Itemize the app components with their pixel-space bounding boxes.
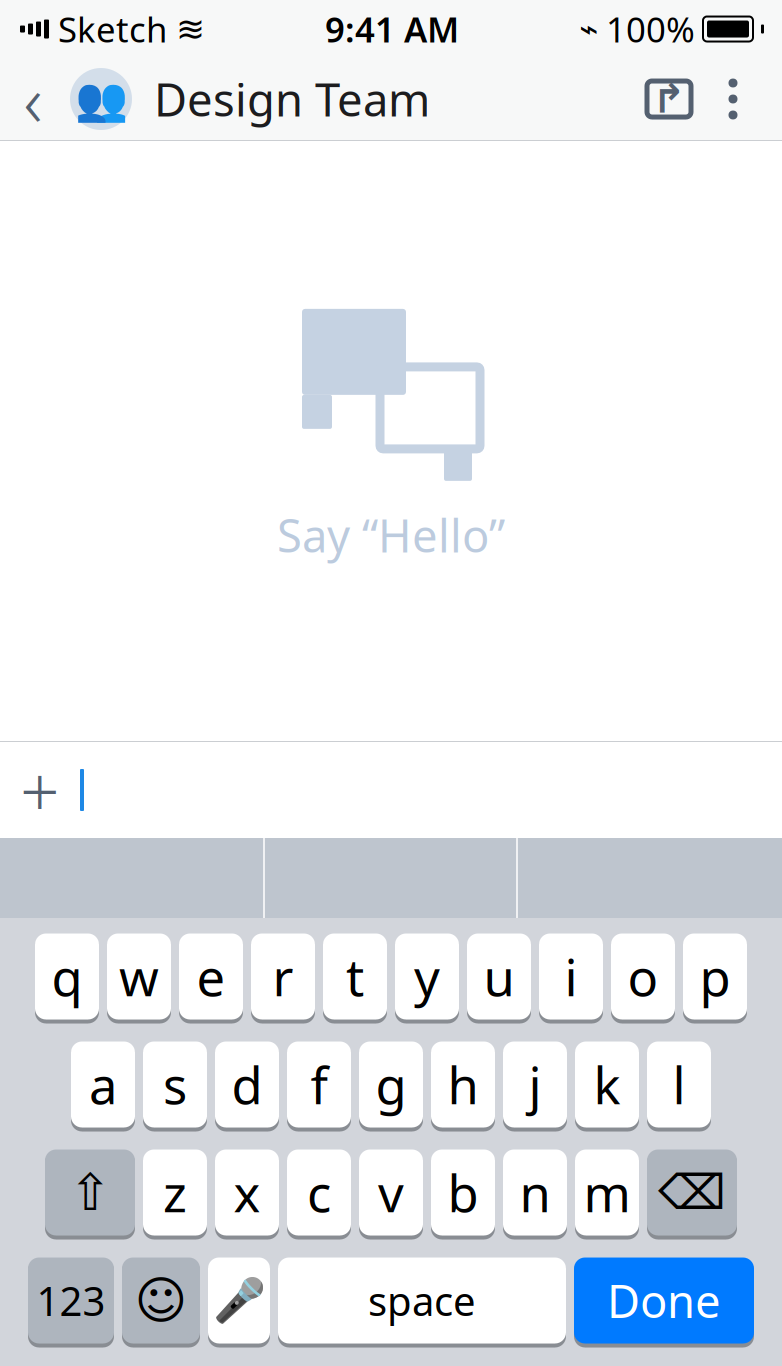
- button[interactable]: Dictate: [208, 1256, 270, 1348]
- button[interactable]: Delete: [647, 1148, 737, 1240]
- staticText: e: [196, 943, 225, 1010]
- staticText: 100%: [606, 6, 695, 52]
- button[interactable]: t: [323, 932, 387, 1024]
- staticText: z: [163, 1159, 187, 1226]
- button[interactable]: Shift: [45, 1148, 135, 1240]
- staticText: 🎤: [212, 1276, 265, 1325]
- button[interactable]: j: [503, 1040, 567, 1132]
- staticText: 9:41 AM: [325, 6, 459, 52]
- button[interactable]: z: [143, 1148, 207, 1240]
- staticText: o: [627, 943, 658, 1010]
- staticText: 👥: [74, 75, 127, 123]
- staticText: y: [414, 943, 440, 1010]
- staticText: ⌁: [579, 11, 598, 47]
- staticText: p: [699, 943, 730, 1010]
- staticText: w: [119, 943, 159, 1010]
- staticText: j: [528, 1051, 541, 1118]
- button[interactable]: k: [575, 1040, 639, 1132]
- staticText: i: [564, 943, 577, 1010]
- button[interactable]: v: [359, 1148, 423, 1240]
- button[interactable]: Design Team: [136, 69, 430, 129]
- staticText: n: [519, 1159, 550, 1226]
- button[interactable]: u: [467, 932, 531, 1024]
- button[interactable]: Add attachment: [0, 744, 80, 836]
- staticText: ‹: [23, 51, 42, 147]
- staticText: h: [447, 1051, 478, 1118]
- staticText: f: [310, 1051, 327, 1118]
- staticText: b: [447, 1159, 478, 1226]
- staticText: ☺: [134, 1272, 187, 1329]
- staticText: r: [272, 943, 293, 1010]
- staticText: g: [375, 1051, 406, 1118]
- button[interactable]: e: [179, 932, 243, 1024]
- staticText: ⌫: [658, 1165, 726, 1220]
- button[interactable]: space: [278, 1256, 566, 1348]
- button[interactable]: Cast: [636, 66, 702, 132]
- staticText: ↱: [652, 76, 686, 122]
- staticText: m: [583, 1159, 630, 1226]
- button[interactable]: Back: [0, 61, 66, 137]
- staticText: 123: [36, 1274, 105, 1327]
- staticText: Done: [607, 1270, 721, 1331]
- button[interactable]: y: [395, 932, 459, 1024]
- button[interactable]: Done: [574, 1256, 754, 1348]
- staticText: s: [163, 1051, 187, 1118]
- staticText: c: [307, 1159, 331, 1226]
- staticText: space: [368, 1274, 476, 1327]
- staticText: k: [593, 1051, 620, 1118]
- staticText: u: [483, 943, 514, 1010]
- button[interactable]: Group avatar: [66, 64, 136, 134]
- button[interactable]: h: [431, 1040, 495, 1132]
- staticText: q: [51, 943, 82, 1010]
- staticText: l: [672, 1051, 685, 1118]
- staticText: +: [20, 744, 60, 836]
- button[interactable]: b: [431, 1148, 495, 1240]
- button[interactable]: Emoji: [122, 1256, 200, 1348]
- button[interactable]: a: [71, 1040, 135, 1132]
- staticText: Design Team: [154, 69, 430, 129]
- button[interactable]: w: [107, 932, 171, 1024]
- button[interactable]: m: [575, 1148, 639, 1240]
- button[interactable]: Message field: [80, 744, 431, 836]
- staticText: a: [89, 1051, 117, 1118]
- button[interactable]: c: [287, 1148, 351, 1240]
- button[interactable]: p: [683, 932, 747, 1024]
- button[interactable]: i: [539, 932, 603, 1024]
- staticText: d: [231, 1051, 262, 1118]
- staticText: ⇧: [69, 1164, 111, 1221]
- staticText: Sketch: [58, 6, 167, 52]
- staticText: v: [378, 1159, 404, 1226]
- button[interactable]: g: [359, 1040, 423, 1132]
- button[interactable]: x: [215, 1148, 279, 1240]
- button[interactable]: d: [215, 1040, 279, 1132]
- button[interactable]: r: [251, 932, 315, 1024]
- button[interactable]: n: [503, 1148, 567, 1240]
- staticText: t: [346, 943, 364, 1010]
- button[interactable]: Numbers: [28, 1256, 114, 1348]
- staticText: Say “Hello”: [277, 505, 505, 565]
- button[interactable]: q: [35, 932, 99, 1024]
- button[interactable]: More options: [702, 66, 764, 132]
- staticText: x: [233, 1159, 260, 1226]
- staticText: ≋: [176, 9, 205, 49]
- button[interactable]: l: [647, 1040, 711, 1132]
- button[interactable]: o: [611, 932, 675, 1024]
- button[interactable]: f: [287, 1040, 351, 1132]
- button[interactable]: s: [143, 1040, 207, 1132]
